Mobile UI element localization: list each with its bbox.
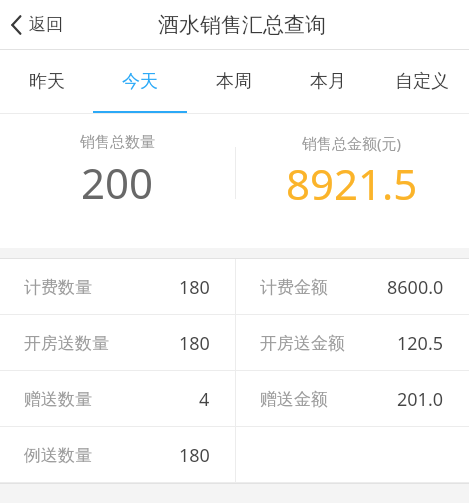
staticText: 8921.5	[286, 155, 418, 212]
staticText: 今天	[122, 70, 158, 93]
staticText: 返回	[29, 14, 63, 35]
staticText: 本周	[216, 70, 252, 93]
staticText: 赠送金额	[260, 389, 328, 410]
staticText: 开房送数量	[24, 333, 109, 354]
staticText: 自定义	[395, 70, 449, 93]
staticText: 201.0	[397, 387, 444, 412]
button[interactable]: 今天	[93, 50, 187, 114]
staticText: 赠送数量	[24, 389, 92, 410]
button[interactable]: 例送数量	[0, 427, 235, 483]
staticText: 120.5	[397, 331, 444, 356]
staticText: 销售总数量	[80, 133, 155, 152]
button[interactable]: 本周	[187, 50, 281, 114]
button[interactable]: 计费数量	[0, 259, 235, 315]
button[interactable]: 返回	[0, 0, 77, 49]
button[interactable]: 销售总金额(元)	[235, 114, 469, 248]
staticText: 200	[81, 154, 154, 211]
staticText: 例送数量	[24, 445, 92, 466]
button[interactable]: 计费金额	[236, 259, 469, 315]
staticText: 180	[179, 443, 210, 468]
button[interactable]: 开房送金额	[236, 315, 469, 371]
staticText: 180	[179, 331, 210, 356]
button[interactable]: 赠送金额	[236, 371, 469, 427]
staticText: 计费金额	[260, 277, 328, 298]
button[interactable]: 开房送数量	[0, 315, 235, 371]
staticText: 8600.0	[387, 275, 444, 300]
staticText: 酒水销售汇总查询	[158, 12, 326, 38]
staticText: 销售总金额(元)	[302, 133, 402, 153]
button[interactable]: 自定义	[375, 50, 469, 114]
staticText: 昨天	[29, 70, 65, 93]
staticText: 计费数量	[24, 277, 92, 298]
staticText: 本月	[310, 70, 346, 93]
button[interactable]: 销售总数量	[0, 114, 235, 248]
staticText: 180	[179, 275, 210, 300]
button[interactable]: 赠送数量	[0, 371, 235, 427]
button[interactable]: 本月	[281, 50, 375, 114]
button[interactable]: 昨天	[0, 50, 93, 114]
staticText: 开房送金额	[260, 333, 345, 354]
staticText: 4	[199, 387, 210, 412]
